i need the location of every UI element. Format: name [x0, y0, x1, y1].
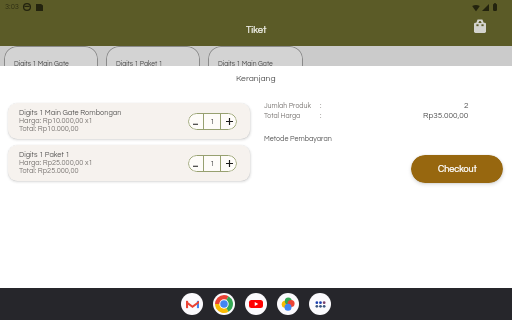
staticText: 1: [210, 159, 215, 168]
staticText: Digits 1 Main Gate: [14, 60, 69, 67]
staticText: Rp35.000,00: [423, 111, 469, 119]
staticText: Digits 1 Main Gate: [218, 60, 273, 67]
staticText: Harga: Rp25.000,00 x1: [19, 159, 93, 167]
staticText: Metode Pembayaran: [264, 135, 332, 142]
staticText: Total: Rp10.000,00: [19, 125, 79, 133]
staticText: Checkout: [438, 165, 477, 174]
button[interactable]: Digits 1 Paket 1: [106, 46, 200, 70]
button[interactable]: Digits 1 Main Gate Rombongan: [8, 103, 250, 139]
button[interactable]: Chrome: [213, 293, 235, 315]
button[interactable]: Decrease quantity: [188, 155, 203, 172]
staticText: 3:03: [5, 3, 19, 11]
staticText: Digits 1 Paket 1: [116, 60, 163, 67]
staticText: Keranjang: [236, 74, 276, 83]
staticText: Digits 1 Main Gate Rombongan: [19, 109, 122, 117]
staticText: 1: [210, 117, 215, 126]
button[interactable]: Digits 1 Main Gate: [208, 46, 303, 70]
staticText: Harga: Rp10.000,00 x1: [19, 117, 93, 125]
staticText: :: [320, 102, 322, 109]
button[interactable]: Digits 1 Paket 1: [8, 145, 250, 181]
staticText: Total: Rp25.000,00: [19, 167, 79, 175]
staticText: :: [320, 112, 322, 119]
button[interactable]: Gmail: [181, 293, 203, 315]
button[interactable]: Cart: [469, 15, 491, 37]
button[interactable]: Increase quantity: [221, 155, 237, 172]
staticText: Digits 1 Paket 1: [19, 151, 70, 159]
button[interactable]: YouTube: [245, 293, 267, 315]
button[interactable]: All apps: [309, 293, 331, 315]
staticText: Tiket: [246, 25, 267, 35]
button[interactable]: Photos: [277, 293, 299, 315]
button[interactable]: Digits 1 Main Gate: [4, 46, 98, 70]
staticText: Total Harga: [264, 112, 301, 119]
button[interactable]: Increase quantity: [221, 113, 237, 130]
staticText: Jumlah Produk: [264, 102, 312, 109]
button[interactable]: Checkout: [411, 155, 503, 183]
staticText: 2: [464, 101, 469, 109]
button[interactable]: Decrease quantity: [188, 113, 203, 130]
